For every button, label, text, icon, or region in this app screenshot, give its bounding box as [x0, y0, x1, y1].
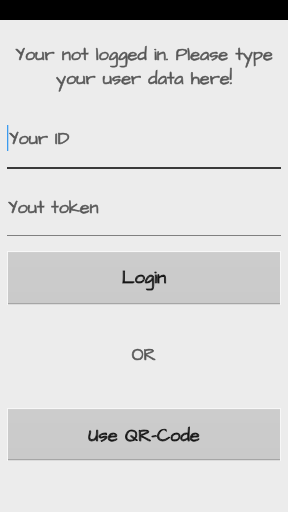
staticText: Your not logged in. Please type your use…	[0, 42, 288, 91]
staticText: Login	[7, 265, 281, 291]
button[interactable]: Login	[7, 251, 281, 305]
button[interactable]: Use QR-Code	[7, 408, 281, 461]
button[interactable]: Yout token	[7, 191, 281, 233]
staticText: Use QR-Code	[7, 423, 281, 449]
staticText: Login	[7, 265, 281, 291]
staticText: Your ID	[9, 126, 283, 151]
button[interactable]: Your ID	[7, 125, 281, 167]
staticText: OR	[0, 343, 288, 367]
staticText: Yout token	[8, 195, 282, 220]
staticText: Your ID	[9, 126, 283, 151]
staticText: Use QR-Code	[7, 423, 281, 449]
staticText: Your not logged in. Please type your use…	[0, 42, 288, 91]
staticText: OR	[0, 343, 288, 367]
staticText: Yout token	[8, 195, 282, 220]
